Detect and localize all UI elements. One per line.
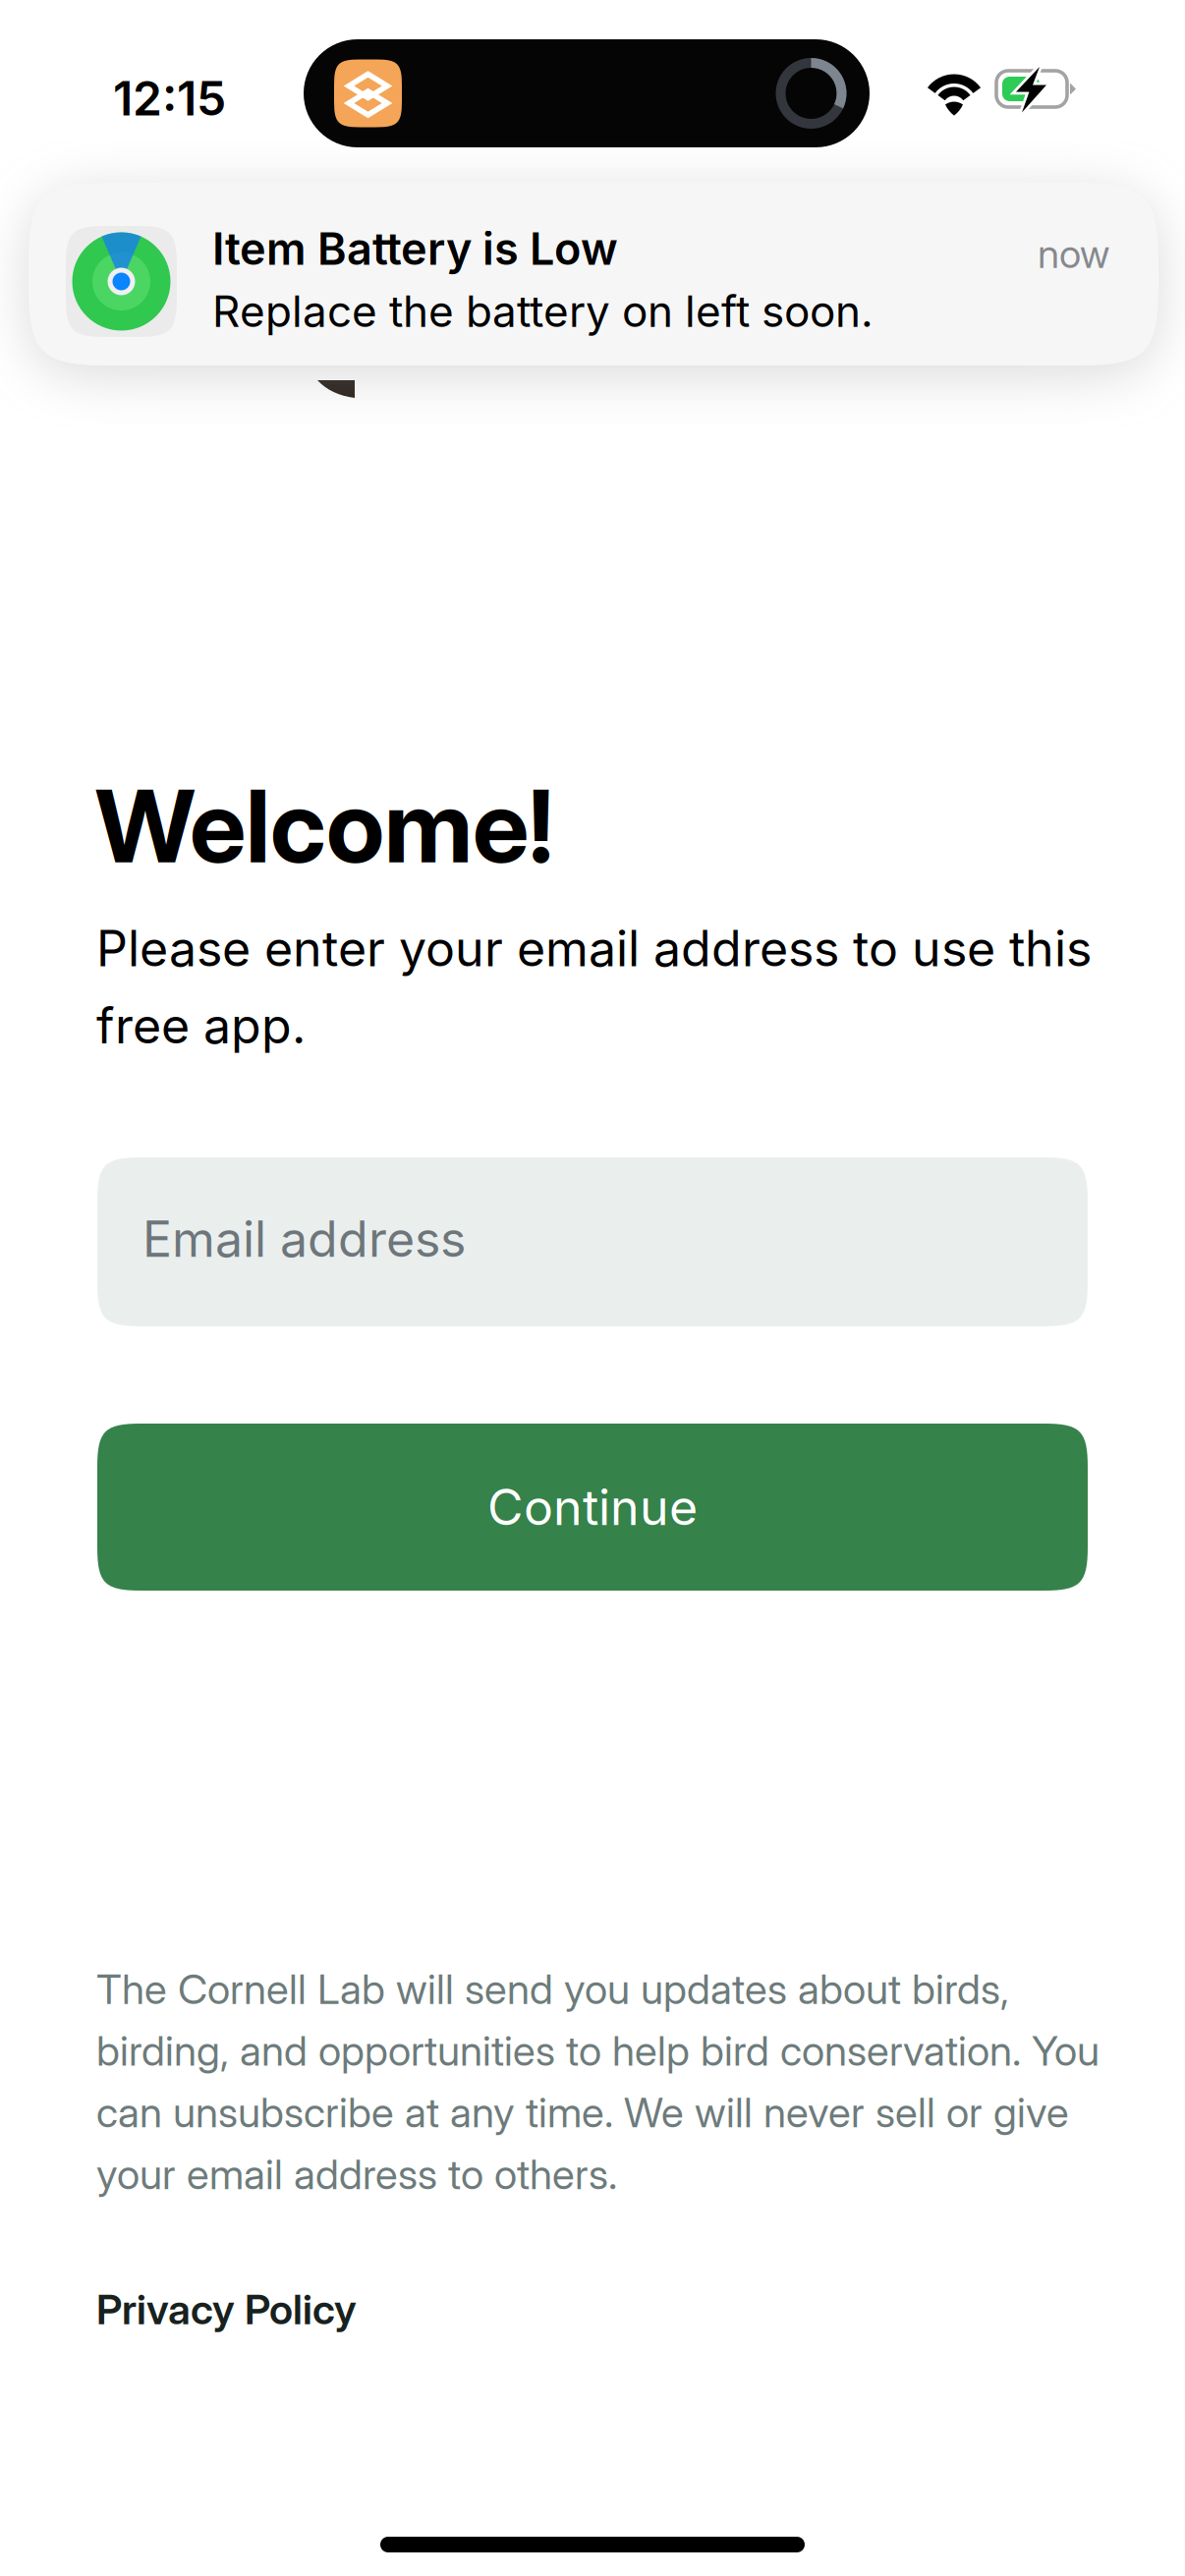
button[interactable]: Continue xyxy=(97,1424,1088,1591)
staticText: now xyxy=(1038,230,1109,277)
button[interactable]: Privacy Policy xyxy=(96,2284,357,2334)
staticText: Please enter your email address to use t… xyxy=(96,919,1092,1055)
staticText: Privacy Policy xyxy=(96,2284,357,2334)
staticText: The Cornell Lab will send you updates ab… xyxy=(96,1964,1100,2199)
staticText: Email address xyxy=(142,1209,466,1269)
staticText: Replace the battery on left soon. xyxy=(212,285,874,337)
button[interactable]: Item Battery is Low xyxy=(28,183,1158,365)
staticText: 12:15 xyxy=(113,70,226,127)
staticText: Item Battery is Low xyxy=(212,222,618,275)
staticText: Continue xyxy=(487,1477,698,1537)
staticText: Welcome! xyxy=(95,765,553,887)
